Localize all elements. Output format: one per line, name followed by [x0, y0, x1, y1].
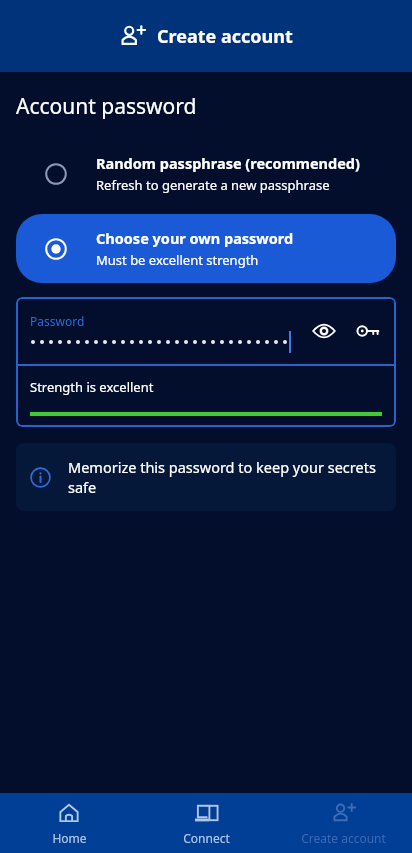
staticText: Refresh to generate a new passphrase — [96, 176, 330, 194]
button[interactable]: Show password — [302, 309, 346, 353]
button[interactable]: Home — [0, 793, 138, 853]
button[interactable]: Memorize this password to keep your secr… — [16, 443, 396, 511]
button[interactable]: Random passphrase (recommended) — [16, 139, 396, 208]
staticText: Memorize this password to keep your secr… — [68, 457, 382, 497]
button[interactable]: Password — [16, 297, 396, 364]
staticText: Home — [52, 830, 87, 846]
staticText: Password — [30, 313, 85, 329]
staticText: Account password — [16, 92, 197, 121]
staticText: Must be excellent strength — [96, 251, 259, 269]
staticText: Choose your own password — [96, 228, 294, 248]
button[interactable]: Create account — [275, 793, 412, 853]
staticText: Create account — [157, 24, 293, 49]
staticText: Random passphrase (recommended) — [96, 153, 360, 173]
staticText: Strength is excellent — [30, 378, 154, 396]
button[interactable]: Choose your own password — [16, 214, 396, 283]
button[interactable]: Connect — [138, 793, 275, 853]
staticText: Connect — [183, 830, 230, 846]
staticText: Create account — [301, 830, 386, 846]
button[interactable]: Generate password — [346, 309, 390, 353]
